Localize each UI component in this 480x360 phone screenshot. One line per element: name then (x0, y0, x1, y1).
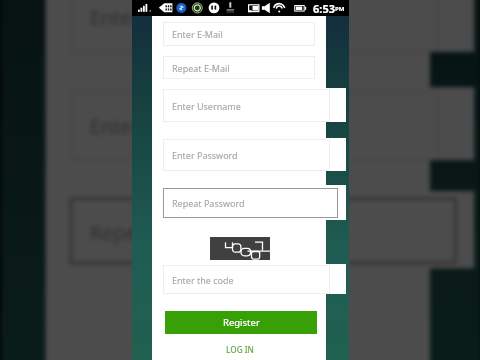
button[interactable]: Enter Password (70, 89, 439, 160)
button[interactable]: Repeat E-Mail (163, 56, 315, 79)
button[interactable]: Repeat Password (70, 198, 457, 264)
button[interactable]: Enter E-Mail (163, 22, 315, 46)
button[interactable]: Enter Username (163, 89, 330, 122)
staticText: Repeat Password (172, 197, 245, 209)
staticText: Enter Password (172, 149, 238, 161)
staticText: Register (223, 316, 260, 329)
staticText: PM (335, 5, 345, 13)
staticText: 6:53 (313, 1, 335, 16)
staticText: Repeat E-Mail (172, 62, 230, 74)
staticText: Enter Username (172, 100, 241, 112)
button[interactable]: Repeat Password (163, 188, 338, 218)
button[interactable]: Register (165, 311, 317, 334)
staticText: Enter E-Mail (172, 28, 223, 40)
staticText: Enter Password (90, 111, 236, 138)
button[interactable]: Enter the code (163, 265, 330, 294)
staticText: LOG IN (226, 344, 254, 355)
staticText: Enter the code (172, 274, 234, 286)
staticText: Enter Username (90, 3, 242, 30)
button[interactable]: Enter Username (70, 0, 439, 52)
staticText: Repeat Password (90, 218, 251, 244)
button[interactable]: Enter Password (163, 139, 330, 171)
button[interactable]: LOG IN (210, 341, 270, 357)
